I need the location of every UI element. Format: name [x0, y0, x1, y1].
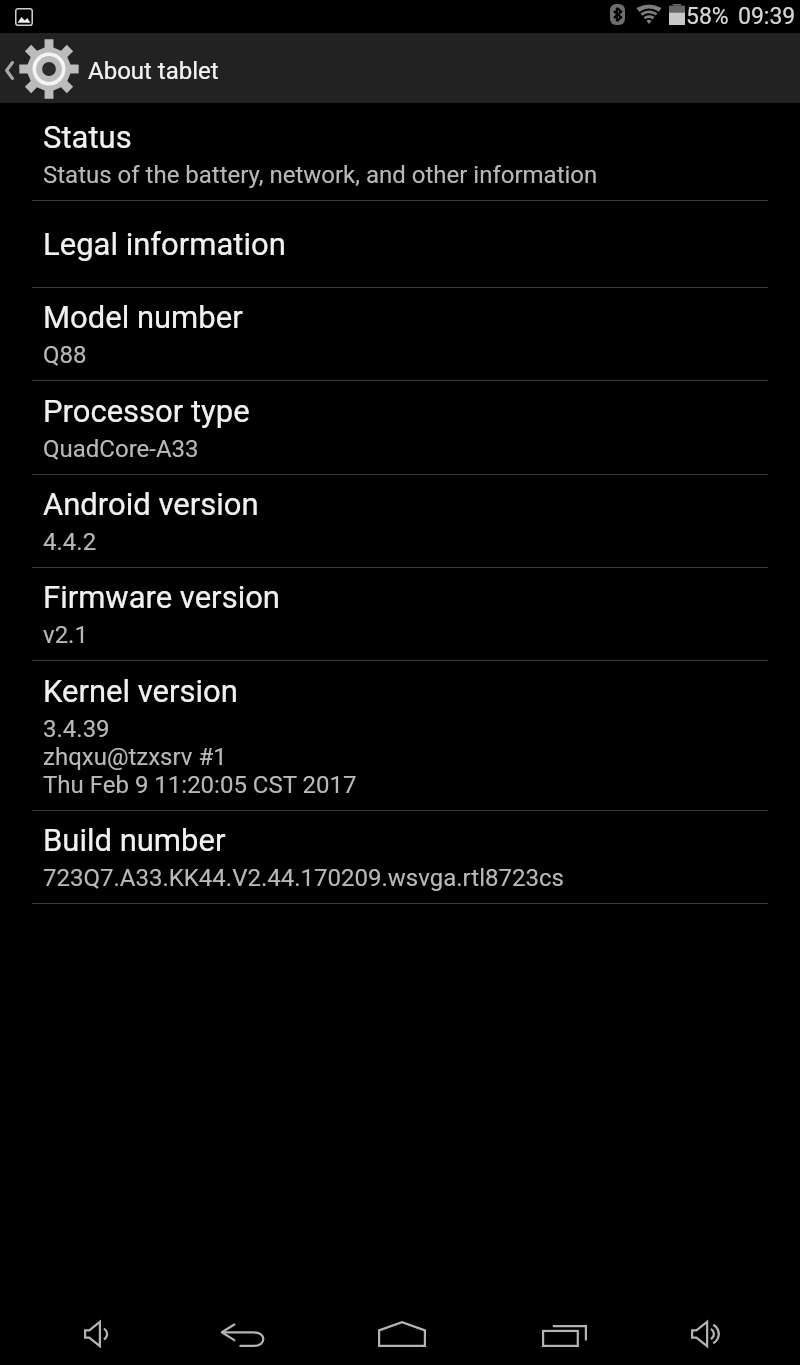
- staticText: 58%: [686, 3, 729, 30]
- staticText: Android version: [43, 486, 259, 522]
- staticText: Status of the battery, network, and othe…: [43, 161, 598, 189]
- staticText: 09:39: [738, 3, 796, 30]
- button[interactable]: Firmware version: [0, 568, 800, 660]
- button[interactable]: Volume down: [56, 1300, 136, 1365]
- staticText: Model number: [43, 299, 243, 335]
- staticText: Build number: [43, 822, 226, 858]
- staticText: 3.4.39 zhqxu@tzxsrv #1 Thu Feb 9 11:20:0…: [43, 715, 357, 799]
- staticText: Legal information: [43, 226, 286, 262]
- button[interactable]: Legal information: [0, 201, 800, 287]
- staticText: v2.1: [43, 621, 88, 649]
- button[interactable]: Android version: [0, 475, 800, 567]
- staticText: 723Q7.A33.KK44.V2.44.170209.wsvga.rtl872…: [43, 864, 564, 892]
- staticText: 4.4.2: [43, 528, 97, 556]
- staticText: QuadCore-A33: [43, 435, 199, 463]
- button[interactable]: Status: [0, 103, 800, 200]
- button[interactable]: Kernel version: [0, 661, 800, 810]
- button[interactable]: Home: [362, 1300, 442, 1365]
- staticText: Status: [43, 119, 132, 155]
- staticText: About tablet: [88, 57, 219, 85]
- button[interactable]: Volume up: [666, 1300, 746, 1365]
- button[interactable]: Build number: [0, 811, 800, 903]
- button[interactable]: Recent apps: [524, 1300, 604, 1365]
- staticText: Processor type: [43, 393, 250, 429]
- staticText: Firmware version: [43, 579, 280, 615]
- staticText: Kernel version: [43, 673, 238, 709]
- button[interactable]: Model number: [0, 288, 800, 380]
- button[interactable]: Back: [202, 1300, 282, 1365]
- button[interactable]: Processor type: [0, 381, 800, 474]
- button[interactable]: Navigate up, Settings: [0, 33, 88, 103]
- staticText: Q88: [43, 341, 87, 369]
